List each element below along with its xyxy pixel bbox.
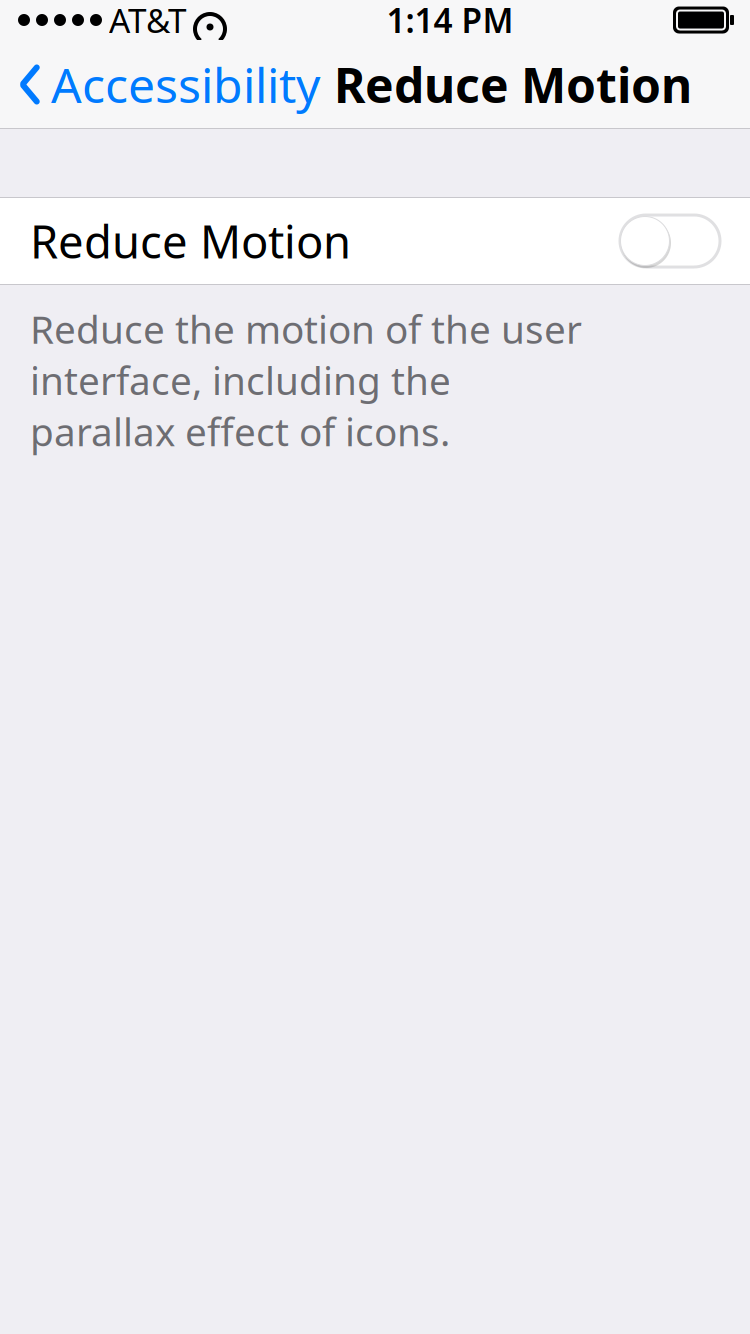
staticText: 1:14 PM: [386, 0, 513, 42]
button[interactable]: Reduce Motion: [0, 198, 750, 284]
staticText: Reduce the motion of the user interface,…: [30, 303, 582, 457]
button[interactable]: Accessibility: [0, 43, 320, 126]
staticText: Reduce Motion: [30, 211, 351, 271]
staticText: AT&T: [109, 0, 187, 42]
staticText: Accessibility: [51, 53, 320, 116]
staticText: Reduce Motion: [334, 53, 692, 116]
